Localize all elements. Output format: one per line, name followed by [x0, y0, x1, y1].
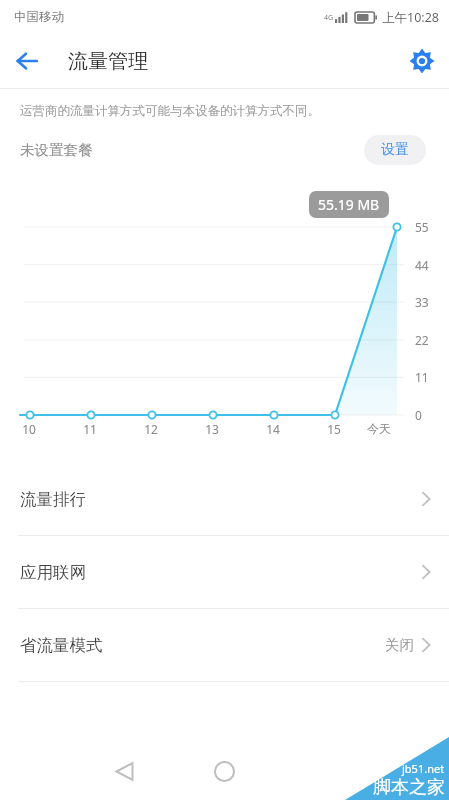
staticText: 55 — [415, 219, 429, 235]
staticText: 上午10:28 — [382, 9, 439, 26]
button[interactable]: Settings — [395, 34, 449, 88]
staticText: 关闭 — [385, 636, 414, 654]
button[interactable]: 应用联网 — [0, 536, 449, 608]
staticText: 应用联网 — [20, 562, 86, 583]
button[interactable]: 流量排行 — [0, 463, 449, 535]
staticText: 11 — [415, 369, 429, 385]
staticText: 22 — [415, 332, 429, 348]
staticText: 今天 — [367, 421, 391, 436]
staticText: 11 — [83, 421, 97, 437]
staticText: 省流量模式 — [20, 635, 103, 656]
button[interactable]: 设置 — [364, 135, 426, 165]
staticText: 中国移动 — [14, 9, 64, 25]
staticText: 4G — [324, 13, 334, 23]
staticText: 运营商的流量计算方式可能与本设备的计算方式不同。 — [20, 103, 320, 119]
button[interactable]: Back — [0, 34, 54, 88]
staticText: 设置 — [381, 141, 409, 159]
staticText: 13 — [205, 421, 219, 437]
button[interactable]: Home — [196, 743, 252, 799]
staticText: jb51.net — [402, 761, 445, 776]
staticText: 流量管理 — [68, 49, 148, 74]
staticText: 55.19 MB — [318, 195, 380, 214]
staticText: 44 — [415, 257, 429, 273]
staticText: 流量排行 — [20, 489, 86, 510]
staticText: 未设置套餐 — [20, 141, 93, 159]
staticText: 0 — [415, 407, 422, 423]
staticText: 10 — [22, 421, 36, 437]
staticText: 33 — [415, 294, 429, 310]
staticText: 15 — [327, 421, 341, 437]
staticText: 14 — [266, 421, 280, 437]
staticText: 脚本之家 — [373, 776, 445, 799]
button[interactable]: Back — [96, 743, 152, 799]
staticText: 12 — [144, 421, 158, 437]
button[interactable]: 省流量模式 — [0, 609, 449, 681]
